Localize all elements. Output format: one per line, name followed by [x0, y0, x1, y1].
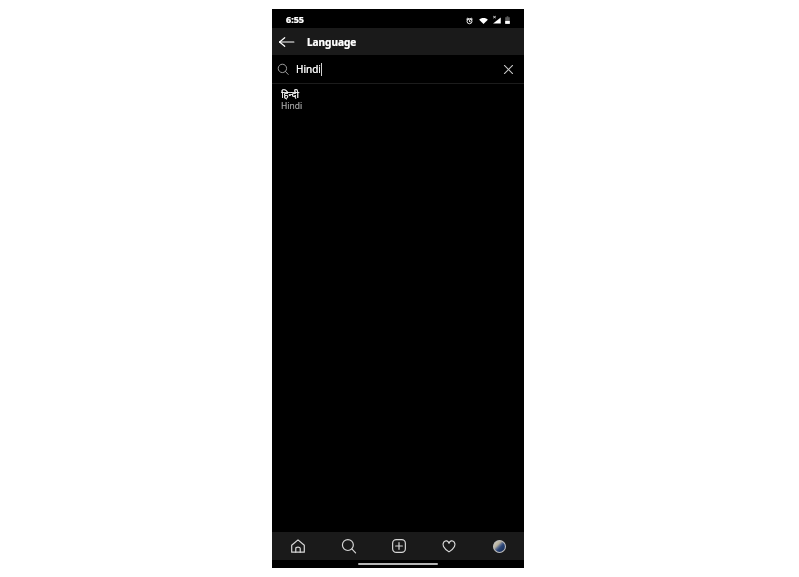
- staticText: हिन्दी: [281, 88, 299, 101]
- button[interactable]: Search: [323, 532, 374, 560]
- button[interactable]: Clear search: [495, 55, 521, 83]
- staticText: Language: [307, 35, 357, 49]
- button[interactable]: Activity: [424, 532, 474, 560]
- staticText: Hindi: [296, 62, 321, 76]
- button[interactable]: Profile: [474, 532, 524, 560]
- staticText: 6:55: [286, 13, 304, 25]
- button[interactable]: Hindi: [272, 55, 524, 83]
- button[interactable]: Home: [272, 532, 323, 560]
- button[interactable]: हिन्दी: [272, 84, 524, 119]
- button[interactable]: Create: [374, 532, 424, 560]
- staticText: Hindi: [281, 100, 303, 112]
- button[interactable]: Back: [272, 28, 300, 55]
